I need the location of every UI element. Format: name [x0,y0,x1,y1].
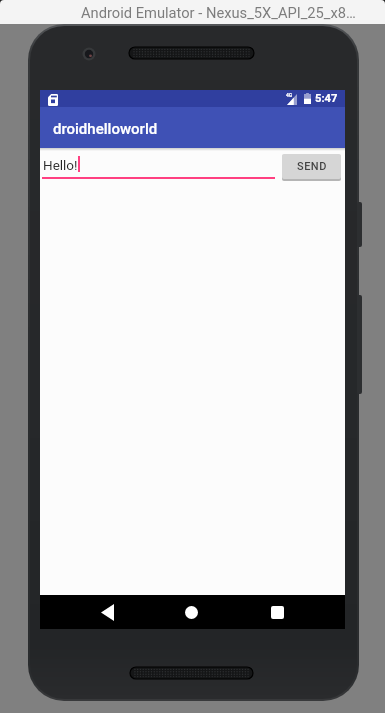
staticText: 5:47 [315,92,338,105]
staticText: droidhelloworld [53,120,158,138]
button[interactable] [257,595,297,629]
staticText: Android Emulator - Nexus_5X_API_25_x8… [81,4,356,21]
button[interactable] [87,595,127,629]
staticText: SEND [297,160,327,173]
staticText: 4G [286,92,293,98]
button[interactable]: Hello! [41,152,278,182]
button[interactable]: SEND [282,154,341,179]
button[interactable] [171,595,211,629]
staticText: Hello! [43,157,78,173]
